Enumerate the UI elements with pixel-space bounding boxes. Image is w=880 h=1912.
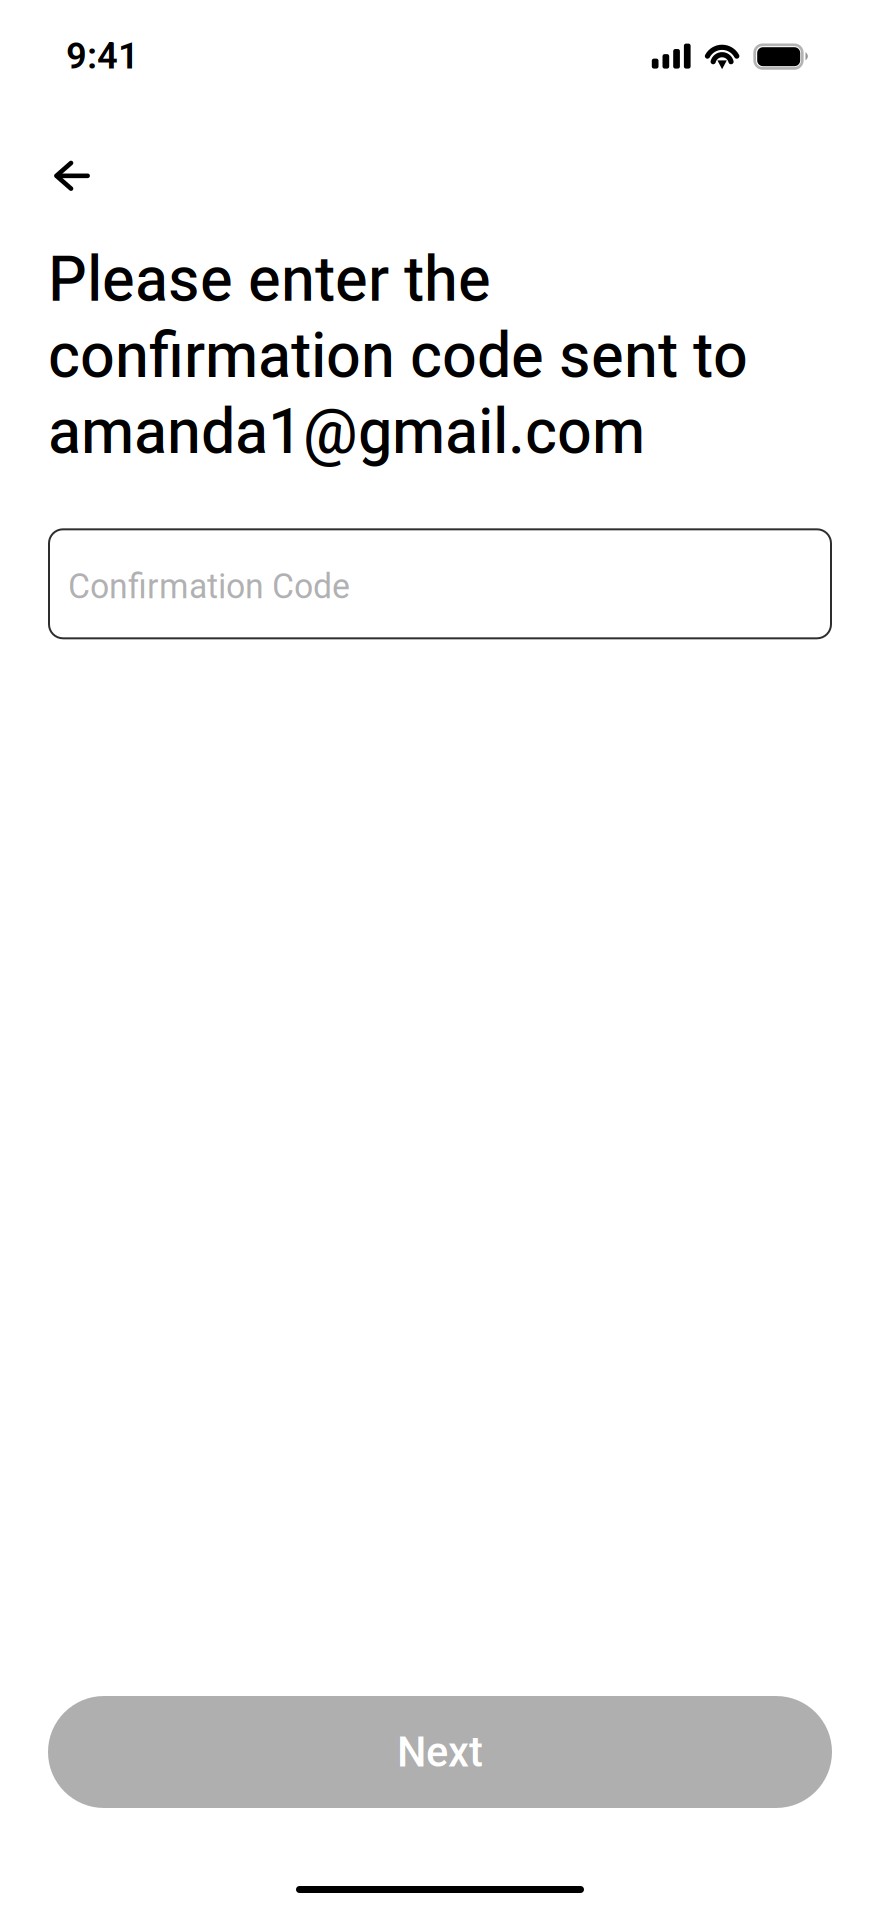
button[interactable]: Back <box>31 130 129 223</box>
staticText: 9:41 <box>66 34 139 78</box>
staticText: Confirmation Code <box>68 566 350 607</box>
button[interactable]: Confirmation Code <box>48 528 832 639</box>
staticText: Next <box>397 1727 483 1777</box>
staticText: Please enter the confirmation code sent … <box>48 243 748 468</box>
button[interactable]: Next <box>48 1696 832 1808</box>
